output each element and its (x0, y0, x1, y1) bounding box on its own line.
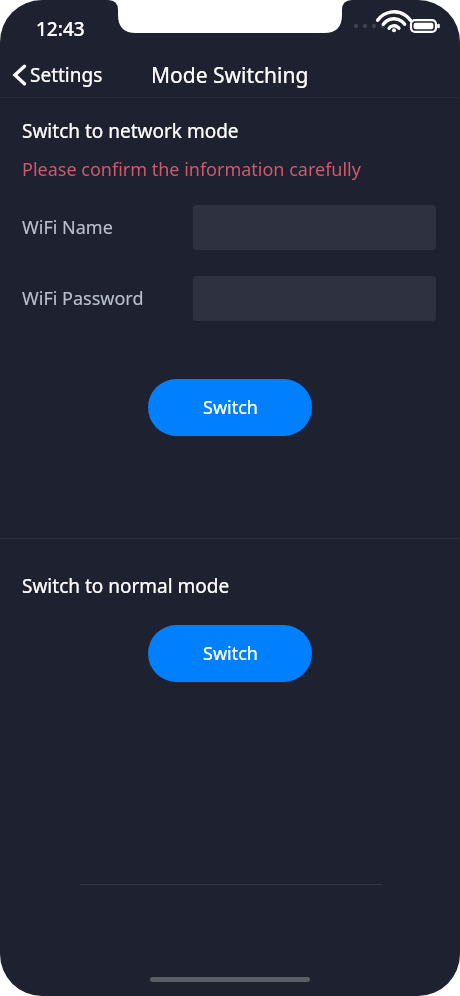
staticText: Switch to network mode (22, 118, 239, 144)
staticText: WiFi Name (22, 215, 113, 240)
staticText: WiFi Password (22, 286, 144, 311)
staticText: Settings (30, 62, 103, 88)
staticText: 12:43 (36, 16, 85, 42)
staticText: Mode Switching (151, 61, 309, 90)
staticText: Switch to normal mode (22, 573, 230, 599)
button[interactable]: Switch (148, 379, 312, 436)
staticText: Switch (203, 641, 258, 666)
staticText: Please confirm the information carefully (22, 157, 361, 182)
button[interactable]: Switch (148, 625, 312, 682)
staticText: Switch (203, 395, 258, 420)
button[interactable]: Settings (0, 56, 113, 94)
